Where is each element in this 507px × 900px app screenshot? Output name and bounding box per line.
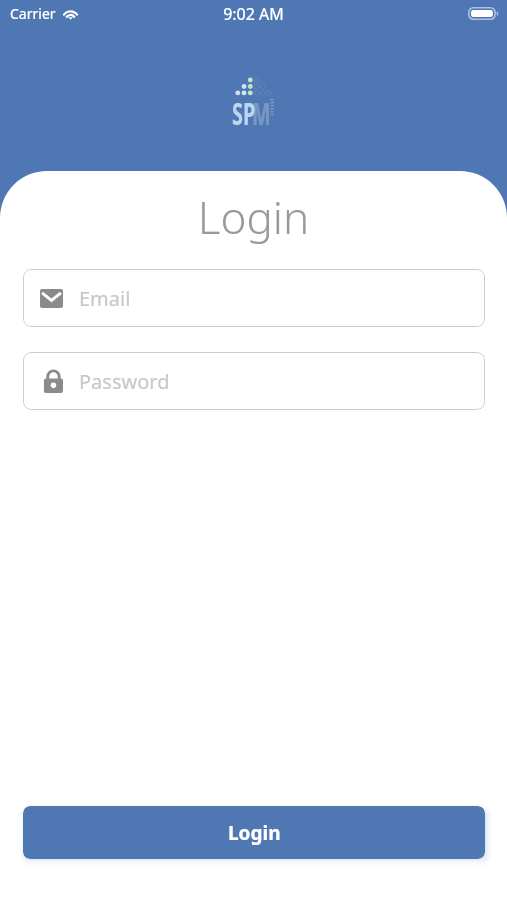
other: Password [40, 369, 63, 393]
button[interactable]: Password [23, 352, 485, 410]
other: Email [40, 289, 63, 308]
button[interactable]: Login [23, 806, 485, 859]
staticText: Login [228, 820, 281, 846]
staticText: SP [232, 93, 256, 134]
staticText: Password [79, 368, 170, 395]
staticText: Email [79, 285, 131, 312]
staticText: Login [0, 187, 507, 247]
staticText: 9:02 AM [0, 3, 507, 25]
button[interactable]: Email [23, 269, 485, 327]
staticText: Carrier [10, 4, 56, 23]
staticText: M [252, 93, 271, 134]
